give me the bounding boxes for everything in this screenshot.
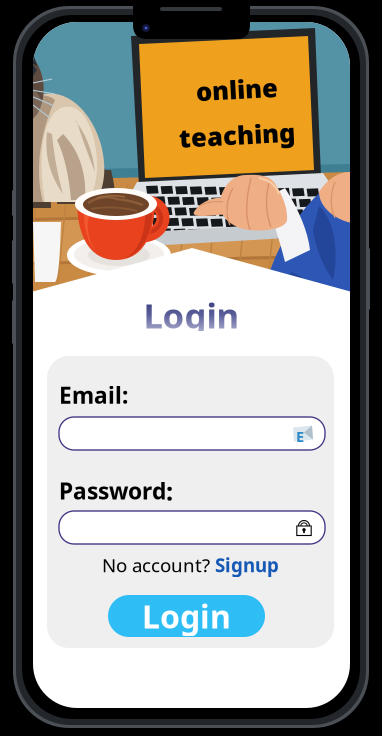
staticText: online bbox=[196, 72, 278, 106]
staticText: Password bbox=[59, 476, 166, 506]
staticText: teaching bbox=[179, 118, 295, 152]
button[interactable]: Signup bbox=[215, 553, 279, 577]
button[interactable]: Login bbox=[108, 595, 265, 637]
staticText: E bbox=[296, 426, 304, 446]
staticText: Email: bbox=[59, 380, 128, 410]
staticText: : bbox=[166, 474, 173, 508]
staticText: Signup bbox=[215, 553, 279, 577]
staticText: No account? bbox=[102, 553, 210, 577]
staticText: Login bbox=[142, 595, 231, 637]
